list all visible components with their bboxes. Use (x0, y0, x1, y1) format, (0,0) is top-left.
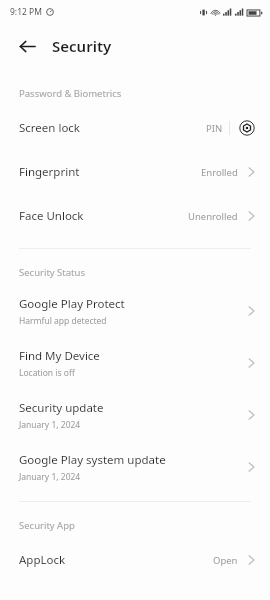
staticText: Password & Biometrics (19, 87, 122, 100)
staticText: Location is off (19, 367, 75, 379)
staticText: Google Play system update (19, 452, 166, 468)
staticText: Security (52, 36, 112, 56)
staticText: January 1, 2024 (19, 471, 81, 483)
button[interactable]: Fingerprint (0, 150, 270, 194)
button[interactable]: Back (12, 31, 42, 61)
button[interactable]: Security update (0, 389, 270, 441)
button[interactable]: Screen lock settings (236, 117, 258, 139)
staticText: AppLock (19, 552, 66, 568)
button[interactable]: AppLock (0, 538, 270, 582)
button[interactable]: Google Play system update (0, 441, 270, 493)
staticText: Security App (19, 519, 75, 532)
staticText: Open (213, 554, 238, 567)
staticText: 9:12 PM (10, 6, 42, 18)
staticText: Harmful app detected (19, 315, 107, 327)
button[interactable]: Google Play Protect (0, 285, 270, 337)
button[interactable]: Find My Device (0, 337, 270, 389)
staticText: Security Status (19, 266, 85, 279)
staticText: Security update (19, 400, 104, 416)
staticText: Screen lock (19, 120, 81, 136)
button[interactable]: Screen lock (0, 106, 270, 150)
staticText: Google Play Protect (19, 296, 125, 312)
staticText: Fingerprint (19, 164, 80, 180)
staticText: Find My Device (19, 348, 100, 364)
staticText: January 1, 2024 (19, 419, 81, 431)
button[interactable]: Face Unlock (0, 194, 270, 238)
staticText: PIN (206, 122, 223, 135)
staticText: Enrolled (201, 166, 238, 179)
staticText: Face Unlock (19, 208, 84, 224)
staticText: Unenrolled (188, 210, 238, 223)
